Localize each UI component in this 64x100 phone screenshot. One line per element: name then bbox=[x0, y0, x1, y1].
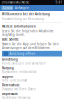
staticText: Kurzanleitung zur Benutzung bbox=[2, 17, 44, 21]
staticText: Hilfe und Kontakt bbox=[2, 79, 27, 82]
staticText: Impressum bbox=[2, 92, 18, 96]
staticText: Willkommen bei der Anleitung bbox=[2, 12, 50, 16]
staticText: Nutzung bbox=[2, 66, 14, 70]
staticText: Anleitung öffnen bbox=[9, 52, 35, 55]
staticText: Zurück bbox=[3, 6, 12, 10]
staticText: Support bbox=[2, 75, 13, 78]
staticText: Umgang mit Ihren Daten bbox=[2, 87, 36, 91]
staticText: Funktionen im Überblick bbox=[2, 70, 36, 74]
button[interactable]: Zurück bbox=[1, 6, 13, 10]
staticText: Konto anlegen und anmelden bbox=[2, 62, 46, 65]
staticText: Weitere Informationen bbox=[2, 25, 36, 28]
staticText: Einrichtung bbox=[2, 58, 18, 61]
staticText: Datenschutz bbox=[2, 83, 19, 87]
staticText: Informatik FAU-Werke bbox=[1, 1, 29, 4]
staticText: 9:41 bbox=[55, 1, 62, 4]
staticText: Lesen Sie die folgenden Abschnitte sorgf… bbox=[2, 29, 54, 37]
staticText: Anfangen bbox=[15, 6, 29, 10]
staticText: Starten Sie die App und folgen Sie den A… bbox=[2, 43, 59, 50]
staticText: Rechtliche Hinweise bbox=[2, 96, 31, 99]
button[interactable]: Anleitung öffnen bbox=[2, 51, 62, 56]
staticText: Erste Schritte bbox=[2, 38, 19, 41]
